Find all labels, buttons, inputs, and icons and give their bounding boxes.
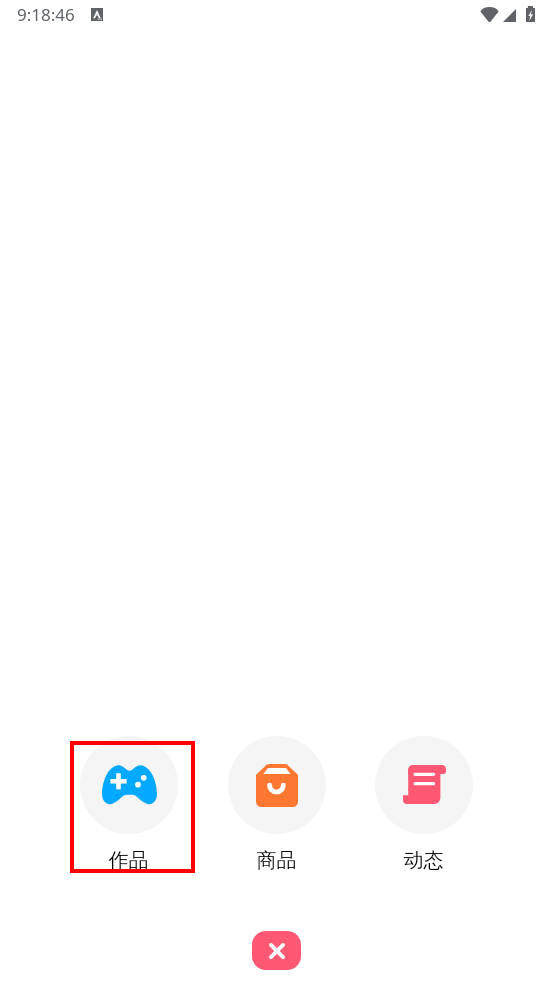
staticText: 商品 [214,848,339,873]
button[interactable]: Close [252,931,301,970]
staticText: 作品 [66,848,191,873]
staticText: 动态 [361,848,486,873]
button[interactable]: 作品 [66,731,191,873]
button[interactable]: 动态 [361,731,486,873]
button[interactable]: 商品 [214,731,339,873]
staticText: 9:18:46 [17,3,75,26]
